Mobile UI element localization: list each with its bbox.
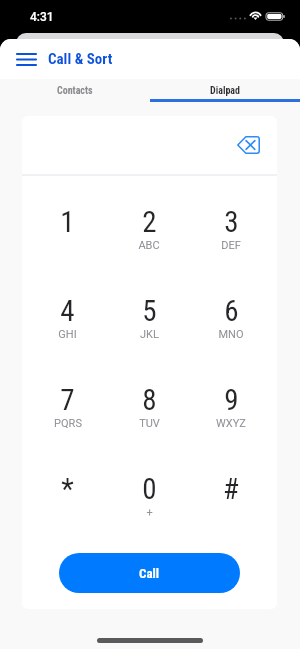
staticText: ABC (138, 239, 160, 252)
button[interactable]: 0 (108, 451, 190, 540)
staticText: * (61, 472, 74, 506)
button[interactable]: Open navigation menu (8, 41, 44, 77)
button[interactable]: 9 (190, 362, 272, 451)
staticText: 7 (60, 383, 75, 417)
staticText: PQRS (54, 417, 82, 430)
staticText: 0 (142, 472, 157, 506)
staticText: Call (139, 566, 160, 581)
button[interactable]: 3 (190, 184, 272, 273)
staticText: DEF (221, 239, 241, 252)
staticText: 4 (60, 294, 75, 328)
button[interactable]: Contacts (0, 79, 150, 102)
button[interactable]: 4 (27, 273, 108, 362)
staticText: JKL (140, 328, 159, 341)
button[interactable]: # (190, 451, 272, 540)
staticText: # (223, 472, 239, 506)
staticText: Call & Sort (48, 50, 113, 68)
button[interactable]: Call (59, 553, 240, 593)
staticText: 1 (60, 205, 75, 239)
staticText: TUV (139, 417, 160, 430)
staticText: 5 (142, 294, 157, 328)
staticText: + (146, 506, 153, 519)
staticText: Dialpad (210, 85, 241, 97)
staticText: 8 (142, 383, 157, 417)
button[interactable]: Delete (232, 129, 264, 161)
staticText: GHI (58, 328, 77, 341)
staticText: 2 (142, 205, 157, 239)
staticText: Contacts (57, 85, 93, 97)
button[interactable]: 6 (190, 273, 272, 362)
button[interactable]: * (27, 451, 108, 540)
button[interactable]: 2 (108, 184, 190, 273)
staticText: 9 (224, 383, 239, 417)
staticText: 4:31 (30, 10, 54, 24)
staticText: MNO (218, 328, 244, 341)
button[interactable]: Dialpad (150, 79, 300, 102)
button[interactable]: 7 (27, 362, 108, 451)
staticText: 6 (224, 294, 239, 328)
button[interactable]: 1 (27, 184, 108, 273)
button[interactable]: 5 (108, 273, 190, 362)
staticText: WXYZ (216, 417, 246, 430)
button[interactable]: 8 (108, 362, 190, 451)
staticText: 3 (224, 205, 239, 239)
